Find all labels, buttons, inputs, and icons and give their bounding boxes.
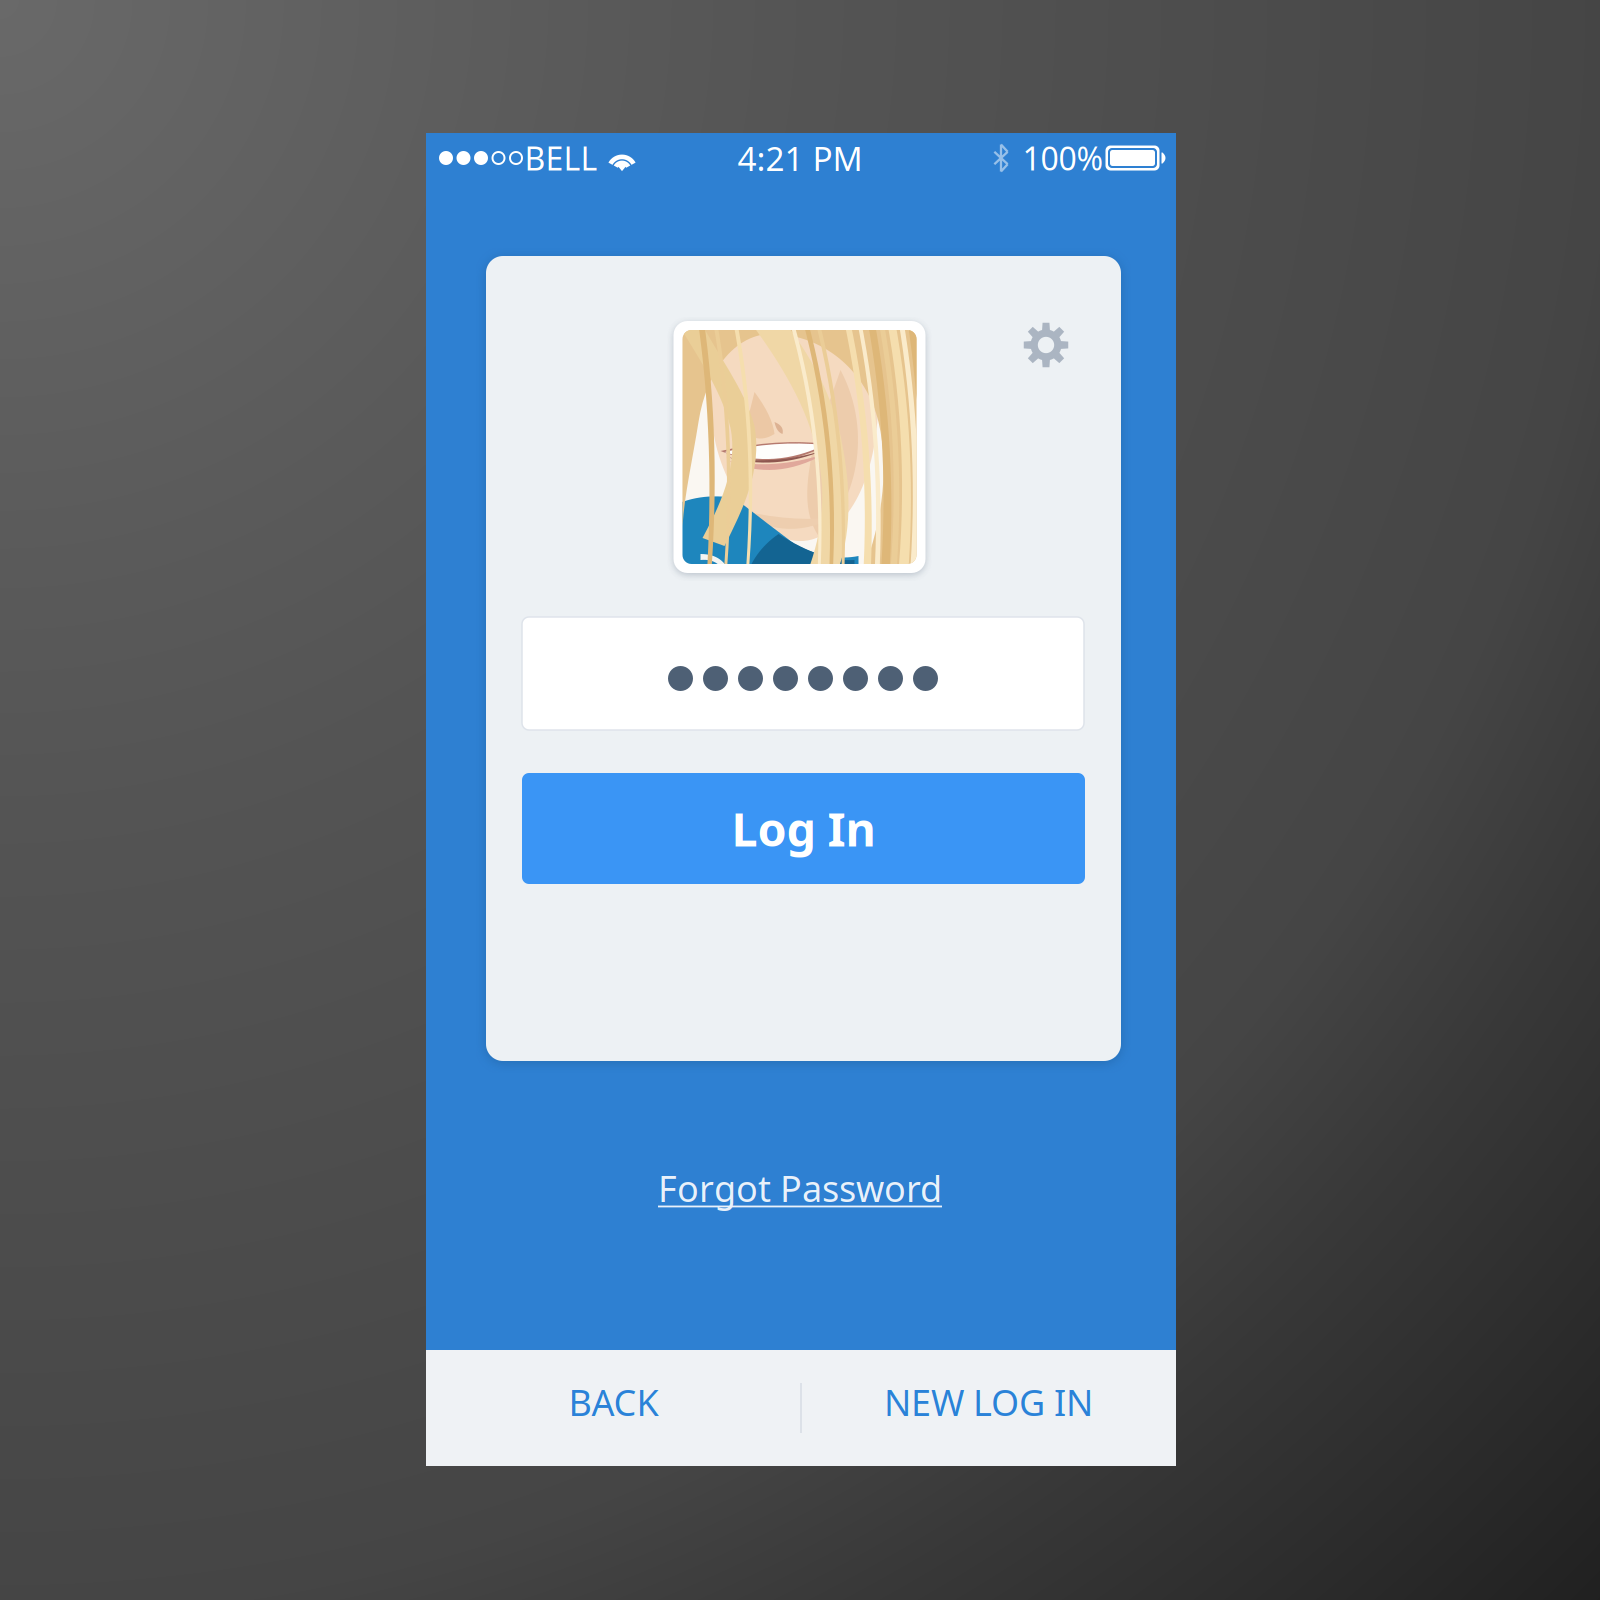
staticText: NEW LOG IN [884, 1378, 1093, 1426]
staticText: BELL [524, 137, 597, 179]
button[interactable]: Profile photo [673, 321, 925, 573]
button[interactable]: BACK [426, 1350, 801, 1466]
button[interactable]: Log In [522, 773, 1085, 884]
staticText: 100% [1022, 137, 1103, 179]
button[interactable]: NEW LOG IN [801, 1350, 1176, 1466]
button[interactable]: Forgot Password [658, 1164, 942, 1212]
button[interactable]: Password [522, 617, 1084, 730]
staticText: Forgot Password [658, 1164, 942, 1212]
staticText: 4:21 PM [737, 136, 862, 180]
staticText: BACK [568, 1378, 658, 1426]
button[interactable]: Settings [1013, 312, 1079, 378]
staticText: Log In [731, 797, 875, 859]
